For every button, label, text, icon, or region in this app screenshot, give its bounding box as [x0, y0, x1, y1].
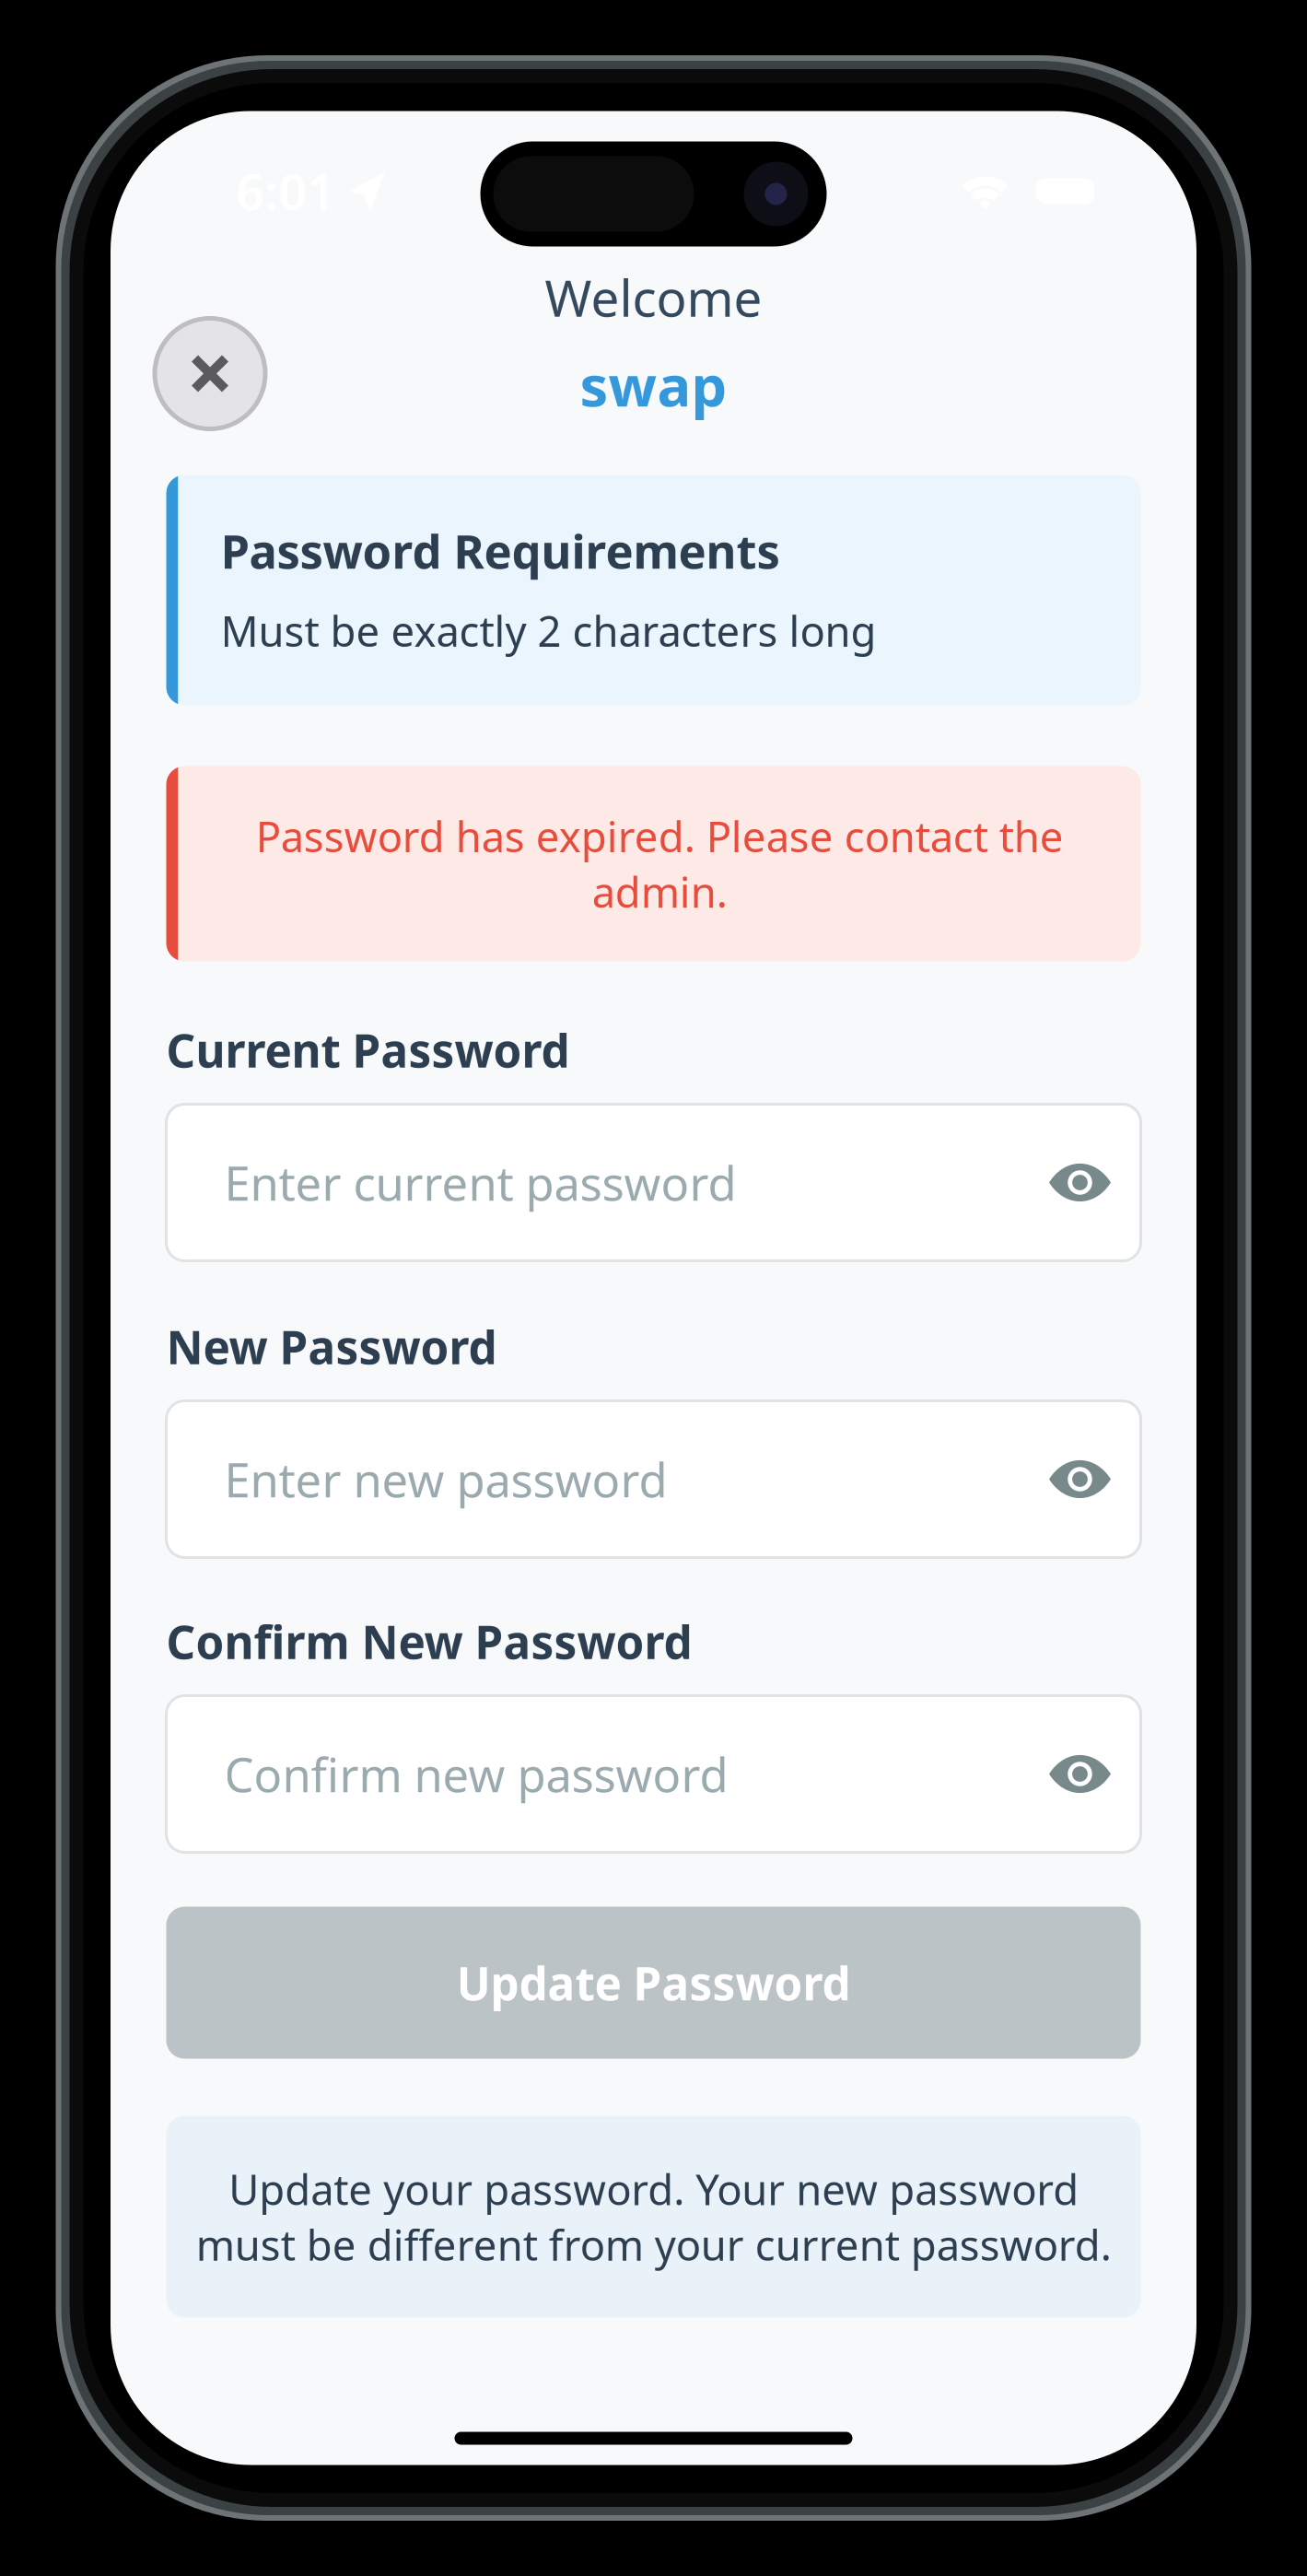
staticText: Password Requirements [221, 520, 780, 582]
staticText: Password has expired. Please contact the… [256, 808, 1063, 919]
button[interactable]: Update Password [166, 1907, 1141, 2059]
staticText: swap [580, 347, 727, 422]
staticText: Enter new password [224, 1448, 667, 1510]
staticText: Update your password. Your new password … [196, 2161, 1111, 2272]
staticText: Welcome [545, 264, 762, 331]
staticText: Confirm New Password [166, 1611, 692, 1671]
staticText: Enter current password [224, 1152, 736, 1214]
button[interactable]: Close [155, 318, 265, 429]
staticText: 6:01 [236, 159, 336, 224]
staticText: Update Password [456, 1952, 851, 2013]
staticText: Must be exactly 2 characters long [221, 603, 876, 658]
staticText: Current Password [166, 1020, 570, 1080]
button[interactable]: Show password [1019, 1696, 1141, 1852]
button[interactable]: Show password [1019, 1401, 1141, 1557]
staticText: Confirm new password [224, 1743, 728, 1805]
button[interactable]: Show password [1019, 1104, 1141, 1261]
staticText: New Password [166, 1316, 497, 1377]
